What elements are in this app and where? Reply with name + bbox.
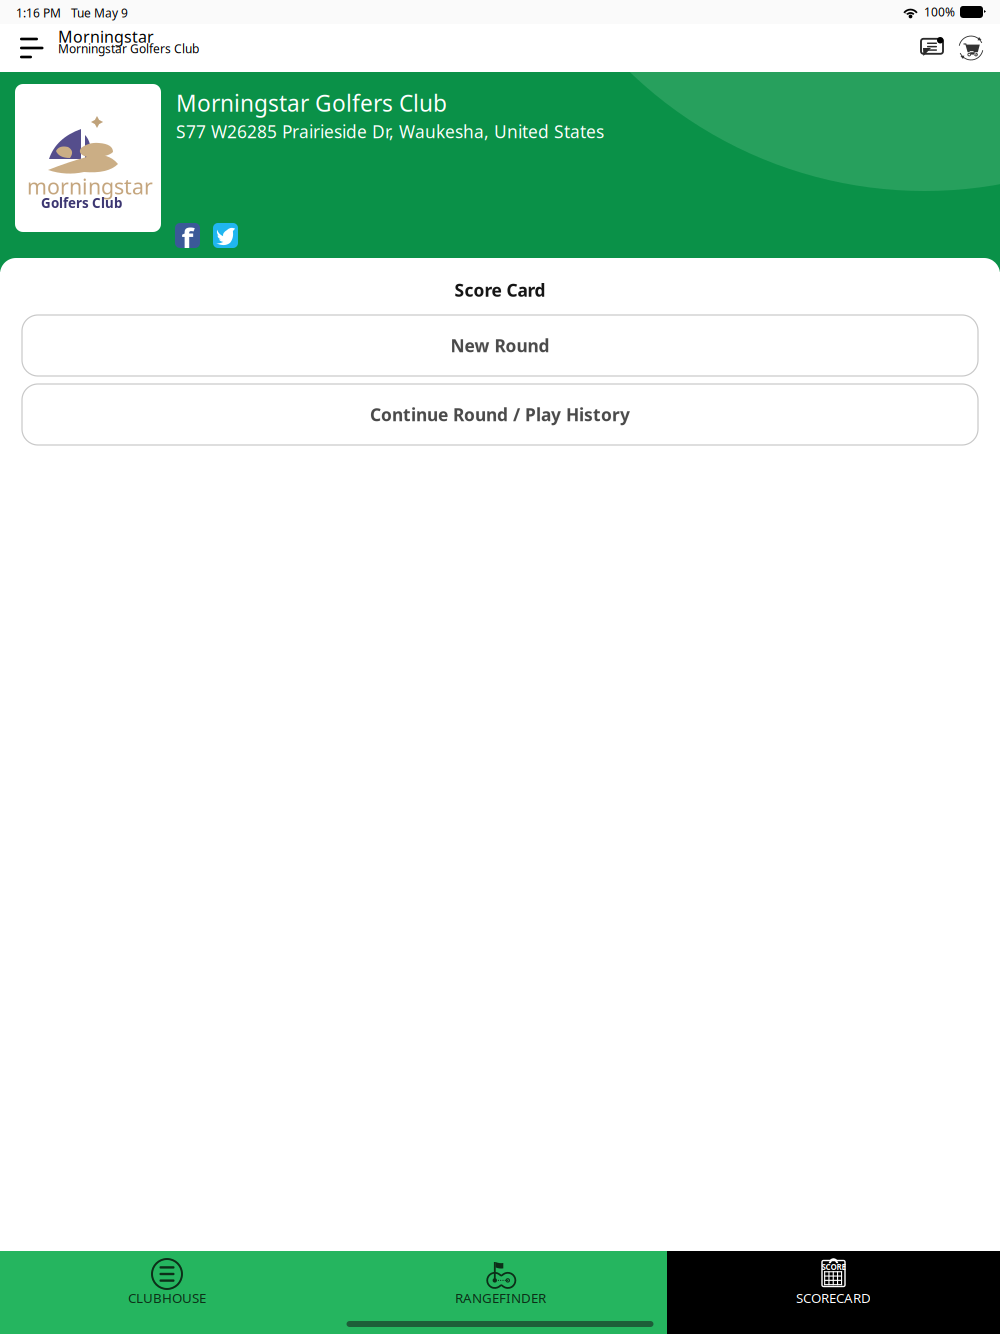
staticText: Morningstar Golfers Club [176, 88, 447, 118]
button[interactable]: Twitter [213, 223, 238, 248]
staticText: Morningstar Golfers Club [58, 40, 199, 56]
button[interactable]: New Round [22, 315, 978, 376]
button[interactable]: Continue Round / Play History [22, 384, 978, 445]
staticText: 1:16 PM [16, 5, 61, 21]
staticText: Golfers Club [41, 194, 122, 212]
staticText: f [181, 218, 193, 259]
button[interactable]: RANGEFINDER [334, 1251, 667, 1334]
button[interactable]: SCORE [667, 1251, 1000, 1334]
staticText: CLUBHOUSE [128, 1289, 206, 1307]
staticText: New Round [450, 334, 549, 357]
button[interactable]: Menu [0, 24, 56, 72]
staticText: morningstar [27, 172, 153, 200]
staticText: SCORE [821, 1262, 845, 1272]
staticText: Tue May 9 [71, 5, 128, 21]
staticText: Morningstar [58, 26, 154, 47]
button[interactable]: Messages [920, 35, 946, 61]
staticText: Continue Round / Play History [370, 403, 630, 426]
staticText: 100% [924, 4, 955, 20]
button[interactable]: Shop [958, 35, 984, 61]
staticText: RANGEFINDER [455, 1289, 546, 1307]
button[interactable]: CLUBHOUSE [0, 1251, 334, 1334]
staticText: S77 W26285 Prairieside Dr, Waukesha, Uni… [176, 120, 604, 143]
button[interactable]: Facebook [175, 223, 200, 248]
staticText: SCORECARD [796, 1289, 871, 1307]
staticText: Score Card [454, 278, 545, 301]
